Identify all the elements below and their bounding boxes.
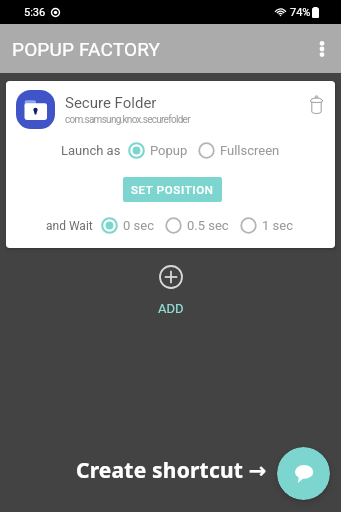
staticText: 1 sec: [262, 218, 293, 233]
staticText: 0 sec: [123, 218, 154, 233]
staticText: 74%: [290, 6, 311, 19]
staticText: SET POSITION: [131, 183, 214, 196]
button[interactable]: More options: [300, 27, 341, 71]
button[interactable]: 0.5 sec: [165, 217, 229, 234]
staticText: 0.5 sec: [187, 218, 229, 233]
button[interactable]: 0 sec: [101, 217, 154, 234]
staticText: com.samsung.knox.securefolder: [65, 114, 190, 126]
staticText: Launch as: [61, 143, 121, 158]
staticText: ADD: [158, 301, 184, 316]
staticText: Fullscreen: [220, 143, 280, 158]
button[interactable]: SET POSITION: [123, 177, 222, 202]
staticText: Popup: [150, 143, 188, 158]
button[interactable]: Chat: [277, 447, 330, 500]
button[interactable]: Create shortcut →: [76, 456, 267, 485]
staticText: 5:36: [24, 6, 46, 19]
button[interactable]: Fullscreen: [198, 142, 280, 159]
staticText: Secure Folder: [65, 94, 157, 112]
staticText: and Wait: [46, 219, 93, 233]
button[interactable]: Popup: [128, 142, 188, 159]
button[interactable]: 1 sec: [240, 217, 293, 234]
button[interactable]: Delete: [300, 89, 332, 121]
staticText: POPUP FACTORY: [12, 38, 161, 60]
button[interactable]: Add: [158, 265, 184, 316]
